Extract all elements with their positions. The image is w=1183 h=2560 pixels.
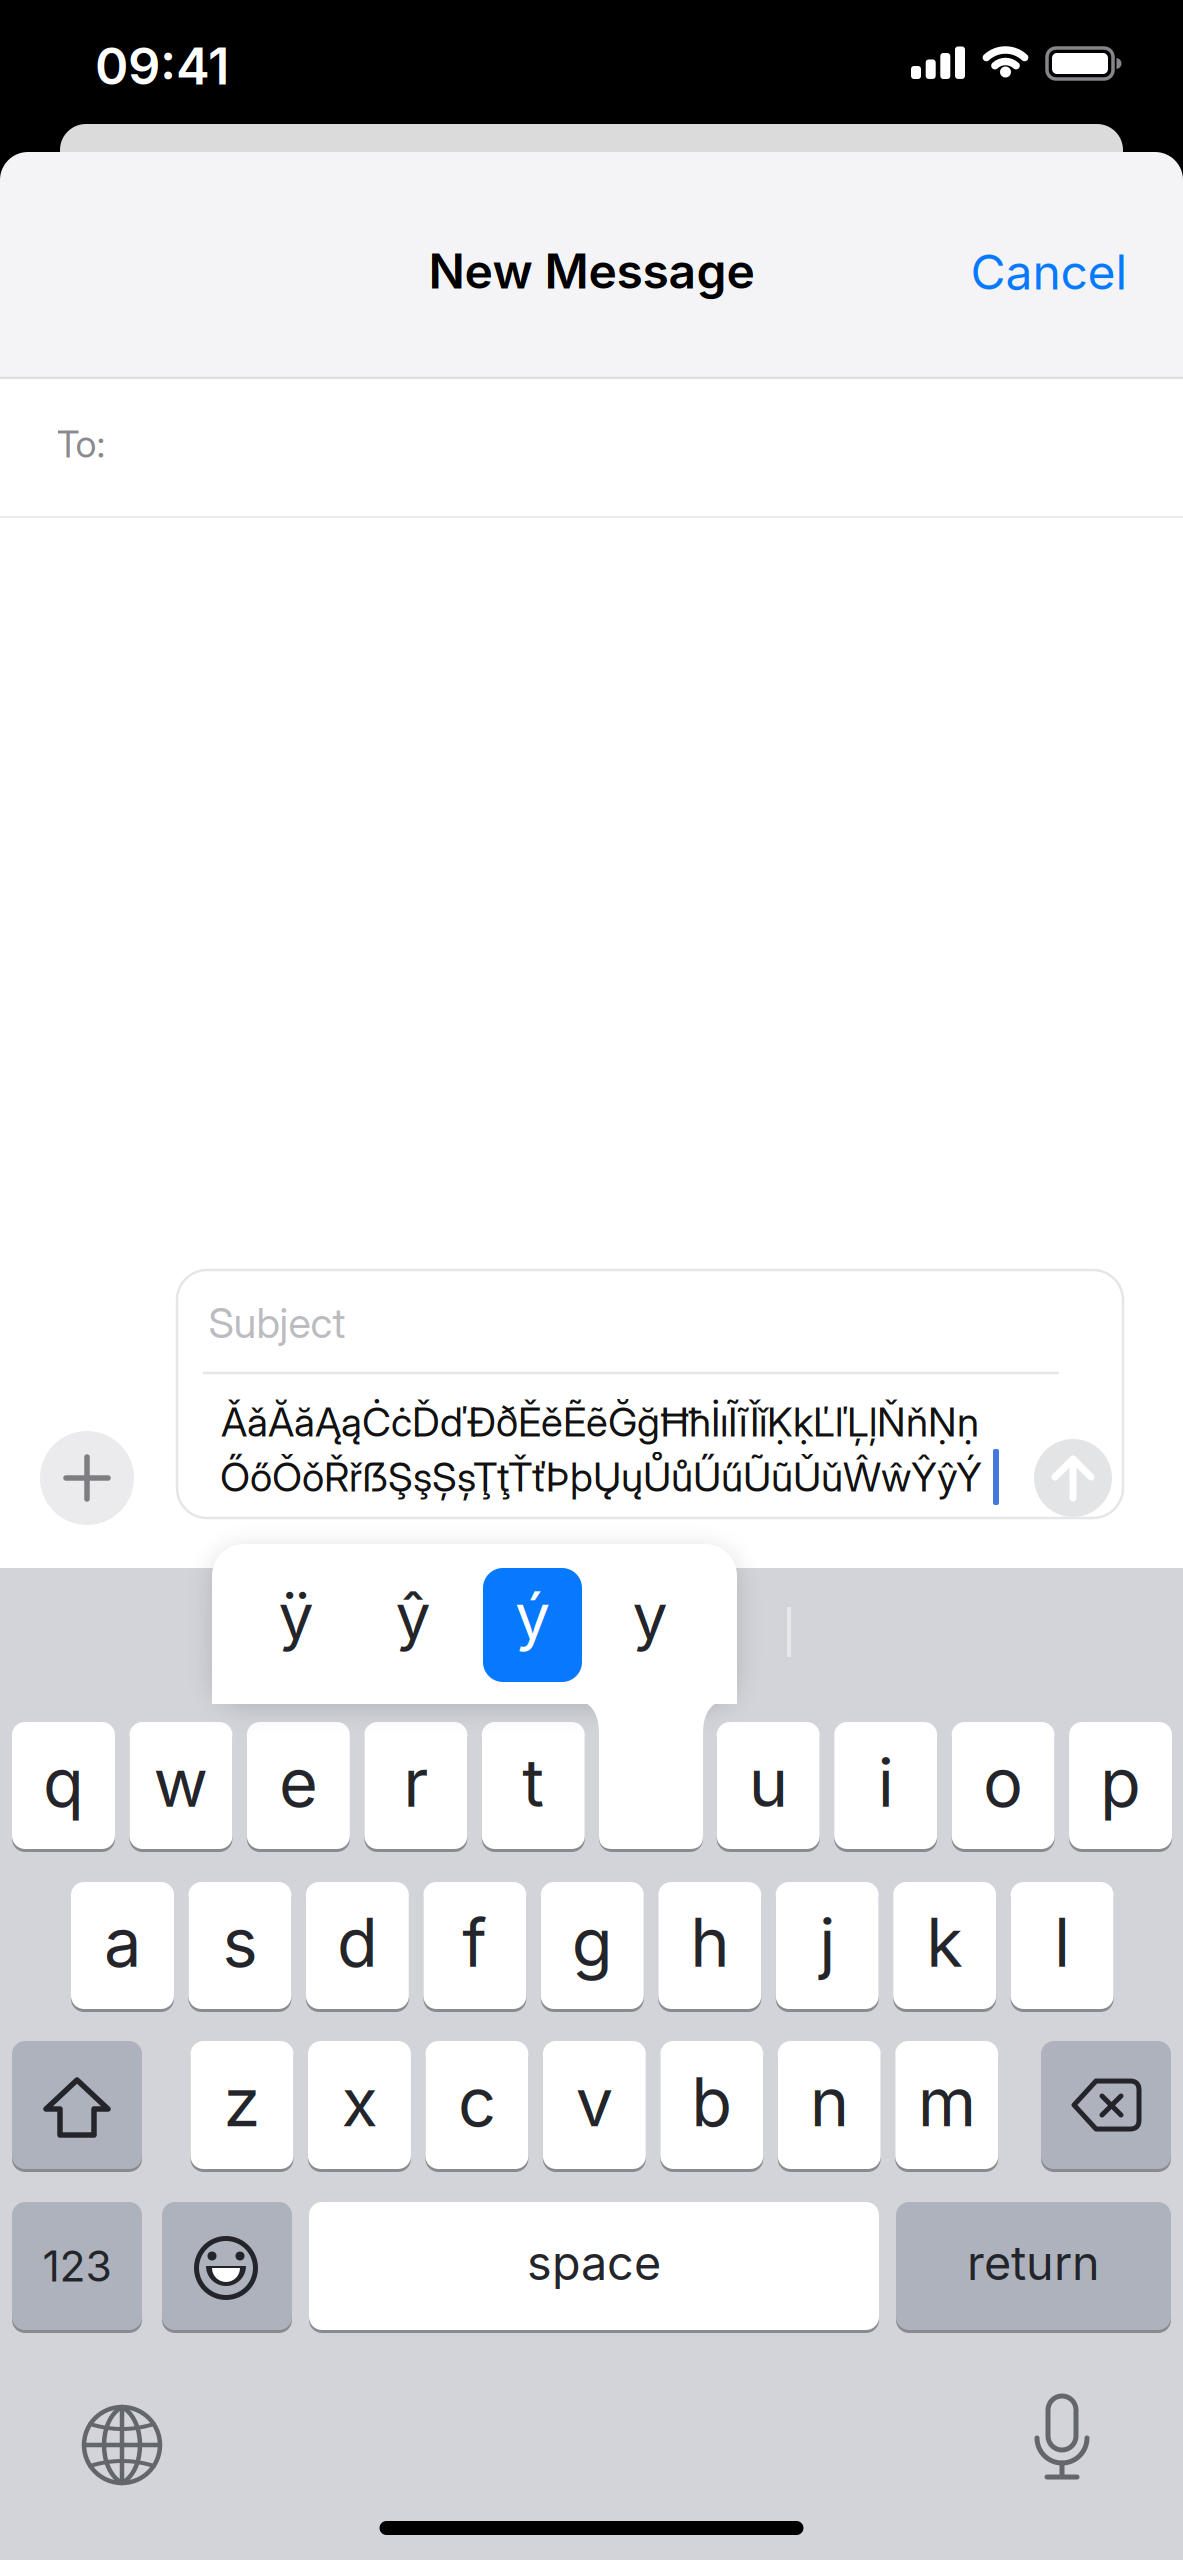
button[interactable]: s bbox=[188, 1880, 291, 2010]
staticText: 123 bbox=[42, 2241, 111, 2291]
staticText: v bbox=[576, 2063, 613, 2141]
button[interactable]: ŷ bbox=[363, 1569, 463, 1683]
button[interactable]: Shift bbox=[12, 2039, 142, 2170]
button[interactable]: n bbox=[778, 2039, 881, 2170]
staticText: f bbox=[462, 1903, 487, 1982]
button[interactable]: e bbox=[247, 1720, 350, 1850]
staticText: i bbox=[878, 1743, 894, 1822]
staticText: return bbox=[967, 2235, 1100, 2291]
button[interactable]: y bbox=[600, 1569, 700, 1683]
button[interactable]: g bbox=[541, 1880, 644, 2010]
button[interactable]: i bbox=[834, 1720, 937, 1850]
staticText: t bbox=[522, 1743, 544, 1822]
button[interactable]: u bbox=[717, 1720, 820, 1850]
button[interactable]: a bbox=[71, 1880, 174, 2010]
staticText: j bbox=[819, 1903, 835, 1982]
staticText: r bbox=[403, 1743, 428, 1822]
button[interactable]: space bbox=[309, 2200, 879, 2331]
button[interactable]: m bbox=[895, 2039, 998, 2170]
staticText: s bbox=[222, 1903, 257, 1982]
staticText: c bbox=[458, 2063, 496, 2141]
staticText: o bbox=[983, 1743, 1023, 1822]
staticText: To: bbox=[56, 422, 105, 466]
staticText: u bbox=[749, 1743, 788, 1822]
staticText: ǍǎĂăĄąĊċĎďĐðĚěẼẽĞğĦħİıĨĩǏǐḲḳĽľĻļŇňṆṇ bbox=[221, 1398, 979, 1446]
staticText: l bbox=[1054, 1903, 1070, 1982]
button[interactable]: Message body bbox=[180, 1378, 1040, 1518]
button[interactable]: Subject bbox=[180, 1273, 1120, 1369]
staticText: z bbox=[223, 2063, 260, 2141]
staticText: ÿ bbox=[278, 1579, 313, 1653]
button[interactable]: l bbox=[1011, 1880, 1114, 2010]
staticText: p bbox=[1100, 1743, 1141, 1822]
staticText: d bbox=[337, 1903, 378, 1982]
button[interactable]: w bbox=[129, 1720, 232, 1850]
staticText: n bbox=[810, 2063, 849, 2141]
staticText: e bbox=[279, 1743, 318, 1822]
staticText: New Message bbox=[428, 243, 754, 299]
button[interactable]: h bbox=[658, 1880, 761, 2010]
button[interactable]: t bbox=[482, 1720, 585, 1850]
staticText: 09:41 bbox=[95, 36, 229, 96]
staticText: a bbox=[104, 1903, 141, 1982]
button[interactable]: Emoji bbox=[162, 2200, 292, 2331]
staticText: ŐőǑǒŘřẞŞşȘșŢţŤťÞþŲųŮůŰűŨũǓǔŴŵŶŷÝ bbox=[220, 1453, 982, 1501]
staticText: Subject bbox=[208, 1299, 345, 1347]
button[interactable]: Send bbox=[1034, 1439, 1112, 1517]
button[interactable]: d bbox=[306, 1880, 409, 2010]
button[interactable]: q bbox=[12, 1720, 115, 1850]
button[interactable]: To bbox=[0, 379, 1183, 517]
button[interactable]: o bbox=[952, 1720, 1055, 1850]
staticText: b bbox=[691, 2063, 732, 2141]
staticText: y bbox=[632, 1579, 667, 1653]
button[interactable]: Apps bbox=[40, 1431, 134, 1525]
button[interactable]: Dictation bbox=[1012, 2393, 1112, 2493]
button[interactable]: Cancel bbox=[949, 227, 1149, 317]
staticText: q bbox=[43, 1743, 84, 1822]
button[interactable]: r bbox=[364, 1720, 467, 1850]
button[interactable]: ý bbox=[483, 1568, 582, 1682]
button[interactable]: p bbox=[1069, 1720, 1172, 1850]
button[interactable]: ÿ bbox=[246, 1569, 346, 1683]
staticText: h bbox=[690, 1903, 729, 1982]
staticText: ý bbox=[515, 1579, 550, 1653]
staticText: g bbox=[572, 1903, 613, 1982]
button[interactable]: return bbox=[896, 2200, 1171, 2331]
button[interactable]: Delete bbox=[1041, 2039, 1171, 2170]
staticText: Cancel bbox=[970, 244, 1127, 300]
staticText: m bbox=[918, 2063, 976, 2141]
staticText: w bbox=[153, 1743, 208, 1822]
button[interactable]: b bbox=[660, 2039, 763, 2170]
button[interactable]: Numbers bbox=[12, 2200, 142, 2331]
staticText: ŷ bbox=[395, 1579, 430, 1653]
staticText: k bbox=[926, 1903, 963, 1982]
staticText: x bbox=[341, 2063, 377, 2141]
button[interactable]: z bbox=[190, 2039, 293, 2170]
button[interactable]: v bbox=[543, 2039, 646, 2170]
staticText: space bbox=[527, 2235, 661, 2291]
button[interactable]: k bbox=[893, 1880, 996, 2010]
button[interactable]: x bbox=[308, 2039, 411, 2170]
button[interactable]: Next keyboard bbox=[72, 2395, 172, 2495]
button[interactable]: f bbox=[423, 1880, 526, 2010]
button[interactable]: j bbox=[776, 1880, 879, 2010]
button[interactable]: c bbox=[425, 2039, 528, 2170]
